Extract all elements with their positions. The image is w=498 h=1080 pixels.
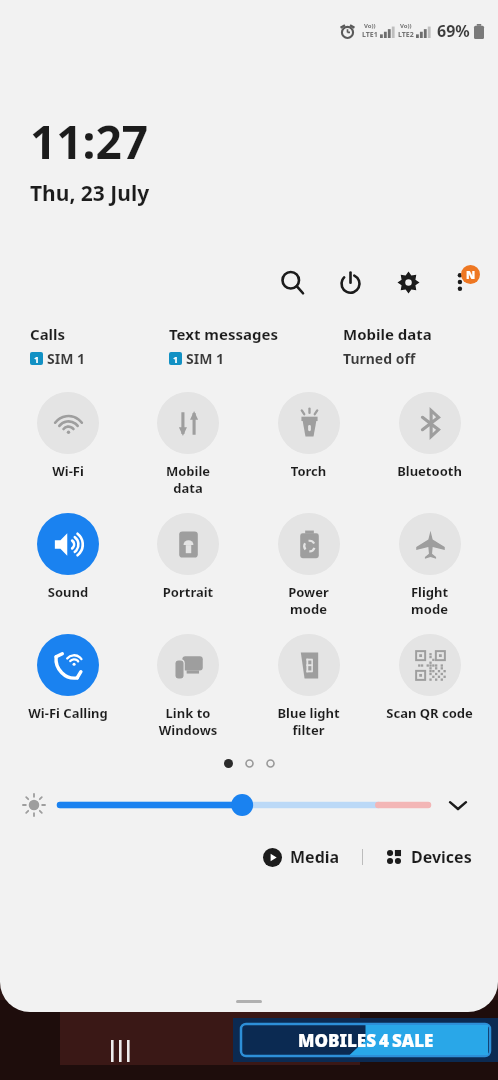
button[interactable]: Mobile data [128, 390, 248, 499]
staticText: Vo)) [400, 22, 412, 30]
staticText: SALE [392, 1029, 434, 1052]
button[interactable]: Power mode [248, 511, 369, 620]
button[interactable]: Torch [248, 390, 369, 482]
button[interactable]: Settings [386, 260, 430, 304]
staticText: Thu, 23 July [30, 179, 150, 208]
staticText: N [466, 267, 476, 282]
staticText: Wi‑Fi [8, 462, 128, 480]
button[interactable]: Sound [8, 511, 128, 603]
staticText: MOBILES [298, 1029, 376, 1052]
staticText: Link to Windows [128, 704, 248, 739]
staticText: LTE2 [398, 30, 414, 40]
staticText: Devices [411, 846, 472, 868]
button[interactable]: Mobile data [343, 324, 482, 368]
staticText: 11:27 [30, 110, 149, 173]
staticText: Mobile data [343, 324, 432, 344]
staticText: Wi‑Fi Calling [8, 704, 128, 722]
button[interactable]: Wi‑Fi Calling [8, 632, 128, 724]
staticText: Flight mode [369, 583, 490, 618]
staticText: Calls [30, 324, 66, 344]
staticText: Torch [248, 462, 369, 480]
button[interactable]: Media [255, 840, 348, 874]
button[interactable]: Link to Windows [128, 632, 248, 741]
button[interactable]: Flight mode [369, 511, 490, 620]
staticText: 1 [34, 353, 40, 365]
staticText: Media [290, 846, 340, 868]
staticText: 1 [173, 353, 179, 365]
button[interactable] [60, 789, 428, 821]
button[interactable]: More options [440, 260, 484, 304]
staticText: Vo)) [364, 22, 376, 30]
staticText: SIM 1 [186, 349, 225, 368]
staticText: SIM 1 [47, 349, 86, 368]
button[interactable]: Portrait [128, 511, 248, 603]
button[interactable]: Blue light filter [248, 632, 369, 741]
staticText: Scan QR code [369, 704, 490, 722]
button[interactable]: Expand brightness settings [440, 787, 476, 823]
staticText: Mobile data [128, 462, 248, 497]
staticText: Sound [8, 583, 128, 601]
button[interactable]: Devices [377, 840, 480, 874]
staticText: 69% [437, 20, 470, 42]
button[interactable]: Scan QR code [369, 632, 490, 724]
other: Brightness [22, 793, 46, 817]
staticText: Turned off [343, 349, 416, 368]
staticText: Text messages [169, 324, 278, 344]
button[interactable]: Wi‑Fi [8, 390, 128, 482]
staticText: Blue light filter [248, 704, 369, 739]
staticText: LTE1 [362, 30, 378, 40]
button[interactable]: Text messages [169, 324, 343, 368]
staticText: Bluetooth [369, 462, 490, 480]
button[interactable]: Power [328, 260, 372, 304]
button[interactable]: Bluetooth [369, 390, 490, 482]
button[interactable]: Calls [30, 324, 169, 368]
staticText: Power mode [248, 583, 369, 618]
staticText: 4 [379, 1029, 389, 1052]
button[interactable]: Search [270, 260, 314, 304]
staticText: Portrait [128, 583, 248, 601]
